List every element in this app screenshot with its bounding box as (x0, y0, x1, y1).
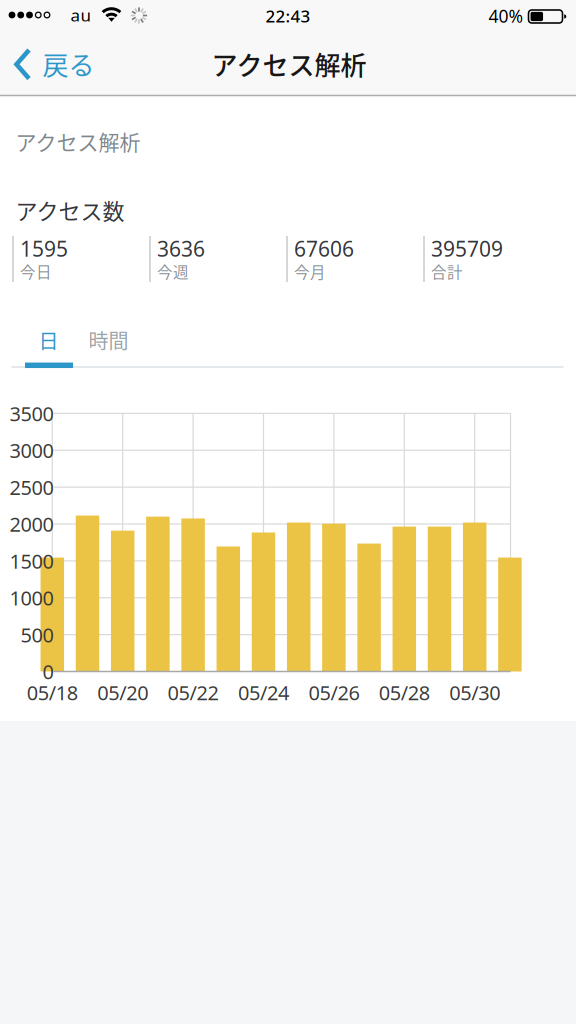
staticText: 3500 (9, 400, 53, 427)
staticText: 05/30 (449, 679, 500, 706)
staticText: アクセス数 (15, 194, 124, 226)
staticText: 今月 (294, 260, 326, 283)
button[interactable]: 日 (24, 318, 72, 362)
staticText: 2500 (9, 473, 53, 501)
staticText: 05/18 (27, 679, 78, 706)
staticText: アクセス解析 (211, 45, 366, 83)
staticText: 05/20 (97, 679, 148, 706)
staticText: 合計 (431, 260, 463, 283)
staticText: 今日 (20, 260, 52, 283)
staticText: 395709 (431, 234, 503, 263)
staticText: 2000 (9, 510, 53, 538)
staticText: 日 (38, 325, 58, 354)
staticText: 05/26 (308, 679, 359, 706)
button[interactable]: 時間 (73, 318, 143, 362)
staticText: 3636 (157, 234, 205, 263)
staticText: 67606 (294, 234, 354, 263)
staticText: 05/22 (168, 679, 219, 706)
staticText: 時間 (88, 325, 128, 354)
button[interactable]: 戻る (0, 36, 110, 95)
staticText: 0 (42, 658, 53, 685)
staticText: 500 (20, 621, 53, 648)
staticText: 戻る (42, 45, 94, 83)
staticText: 今週 (157, 260, 189, 283)
staticText: 05/24 (238, 679, 289, 706)
staticText: 05/28 (379, 679, 430, 706)
staticText: 40% (488, 4, 523, 28)
staticText: 1000 (9, 584, 53, 611)
staticText: 1500 (9, 547, 53, 574)
staticText: 3000 (9, 437, 53, 464)
staticText: 1595 (20, 234, 68, 263)
staticText: au (70, 3, 91, 27)
staticText: アクセス解析 (15, 126, 140, 156)
staticText: 22:43 (265, 4, 310, 28)
